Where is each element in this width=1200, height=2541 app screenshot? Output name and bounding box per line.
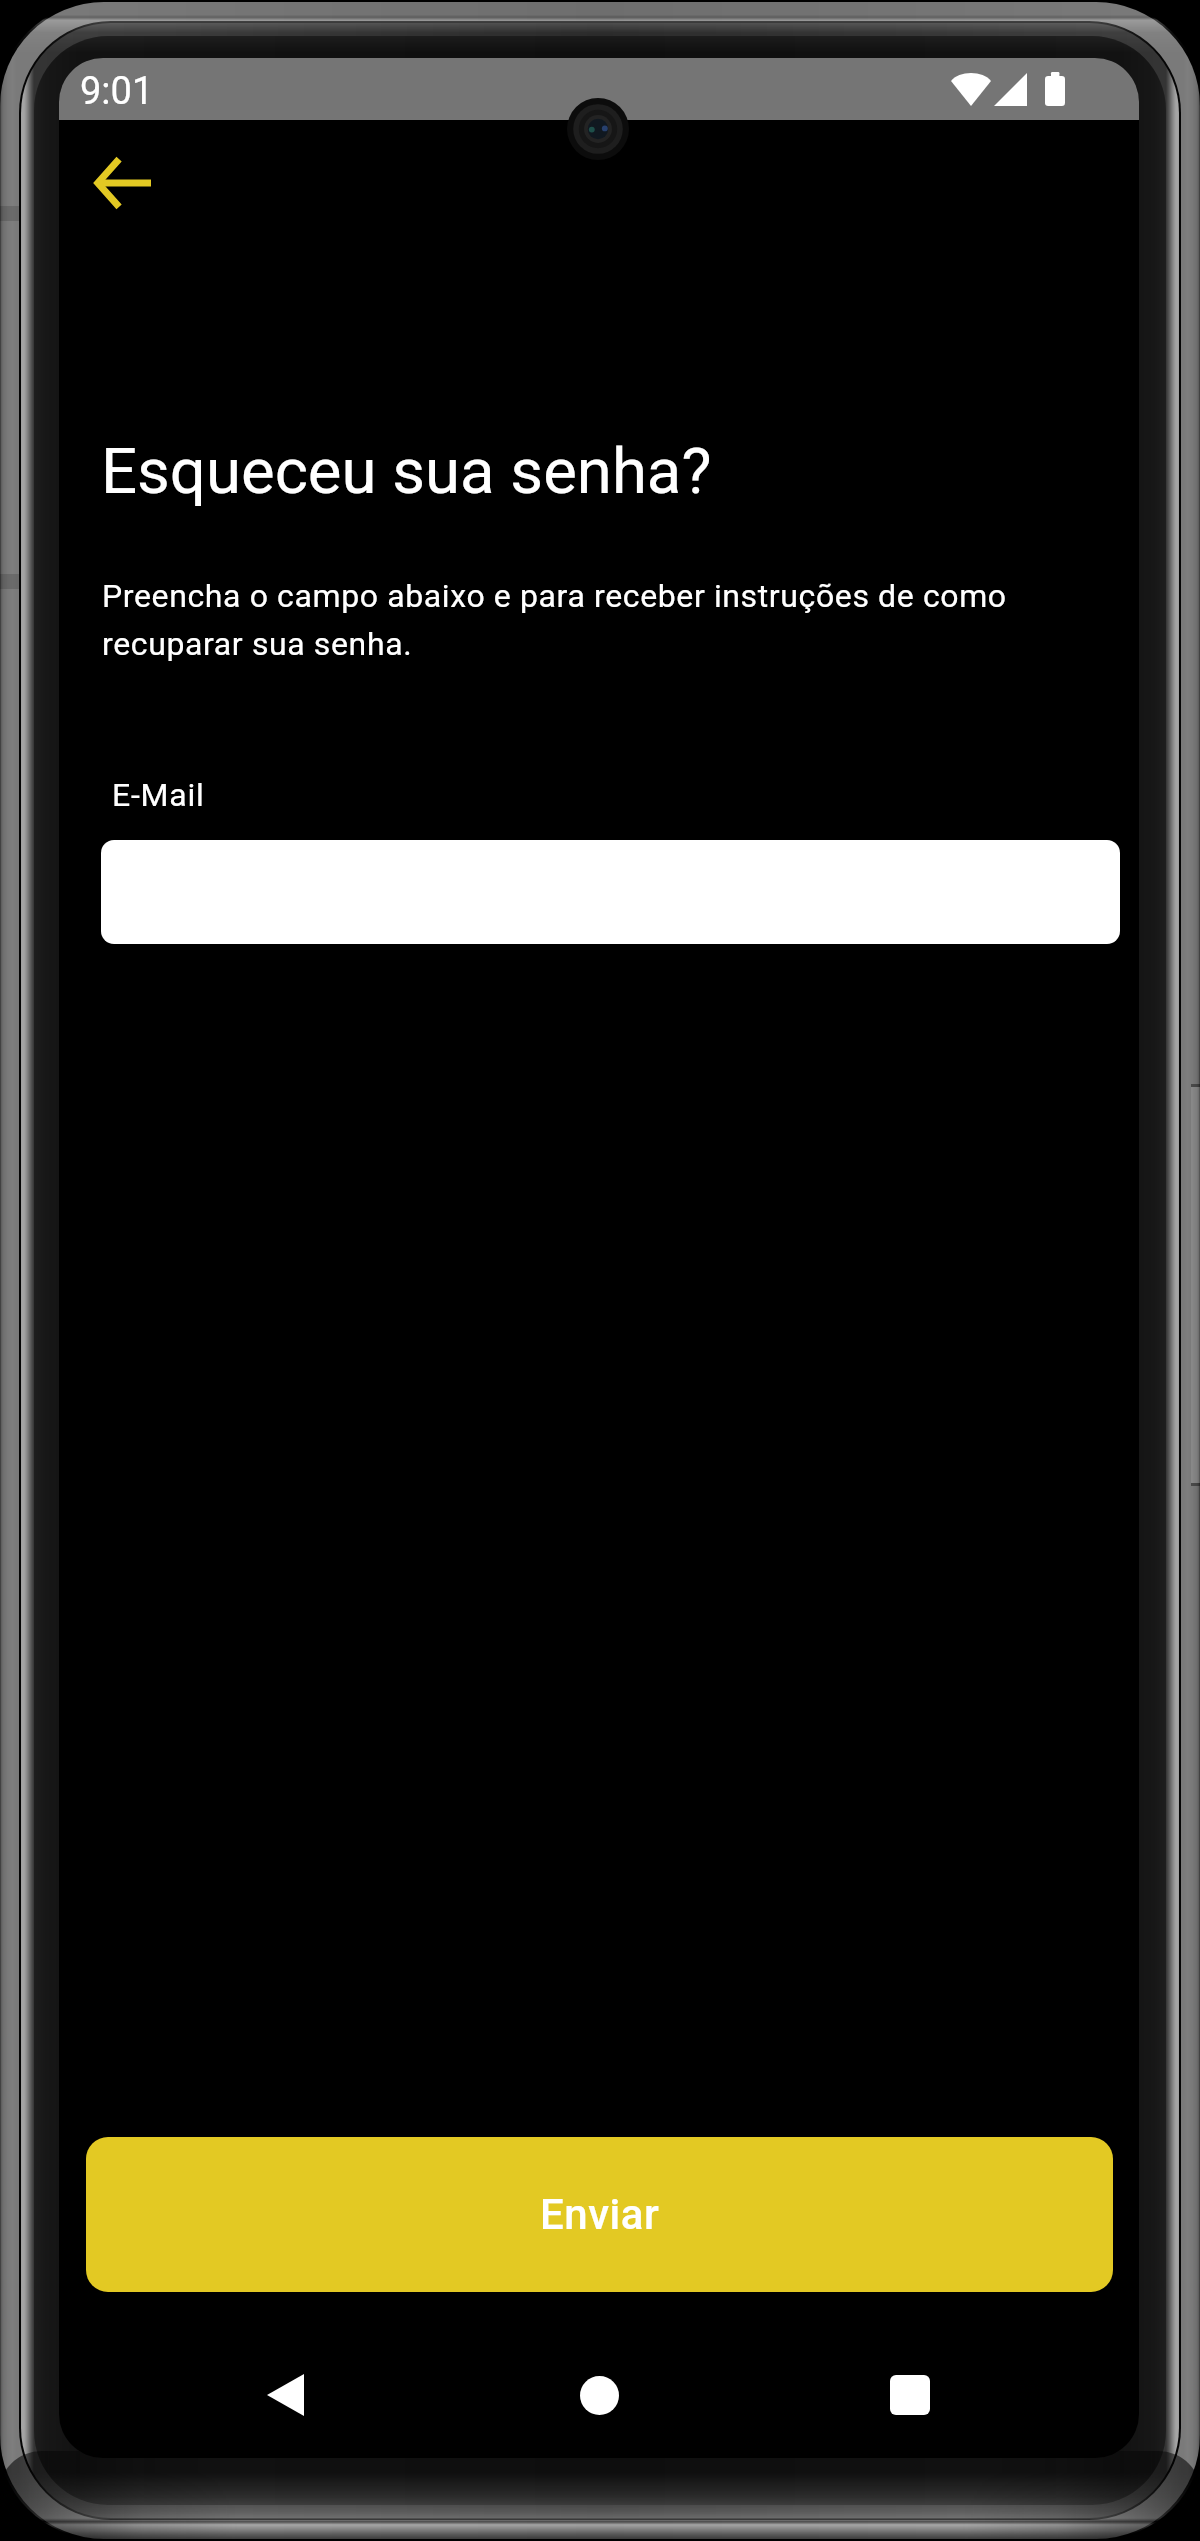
button[interactable]: Back (67, 128, 177, 238)
staticText: E-Mail (112, 776, 205, 814)
staticText: Esqueceu sua senha? (101, 434, 712, 508)
button[interactable]: Home (544, 2340, 654, 2450)
button[interactable]: Back (230, 2340, 340, 2450)
staticText: 9:01 (80, 69, 154, 114)
staticText: Enviar (540, 2190, 660, 2239)
staticText: Preencha o campo abaixo e para receber i… (102, 577, 1022, 662)
button[interactable]: E-Mail input field (101, 840, 1120, 944)
button[interactable]: Recents (855, 2340, 965, 2450)
button[interactable]: Enviar (86, 2137, 1113, 2292)
